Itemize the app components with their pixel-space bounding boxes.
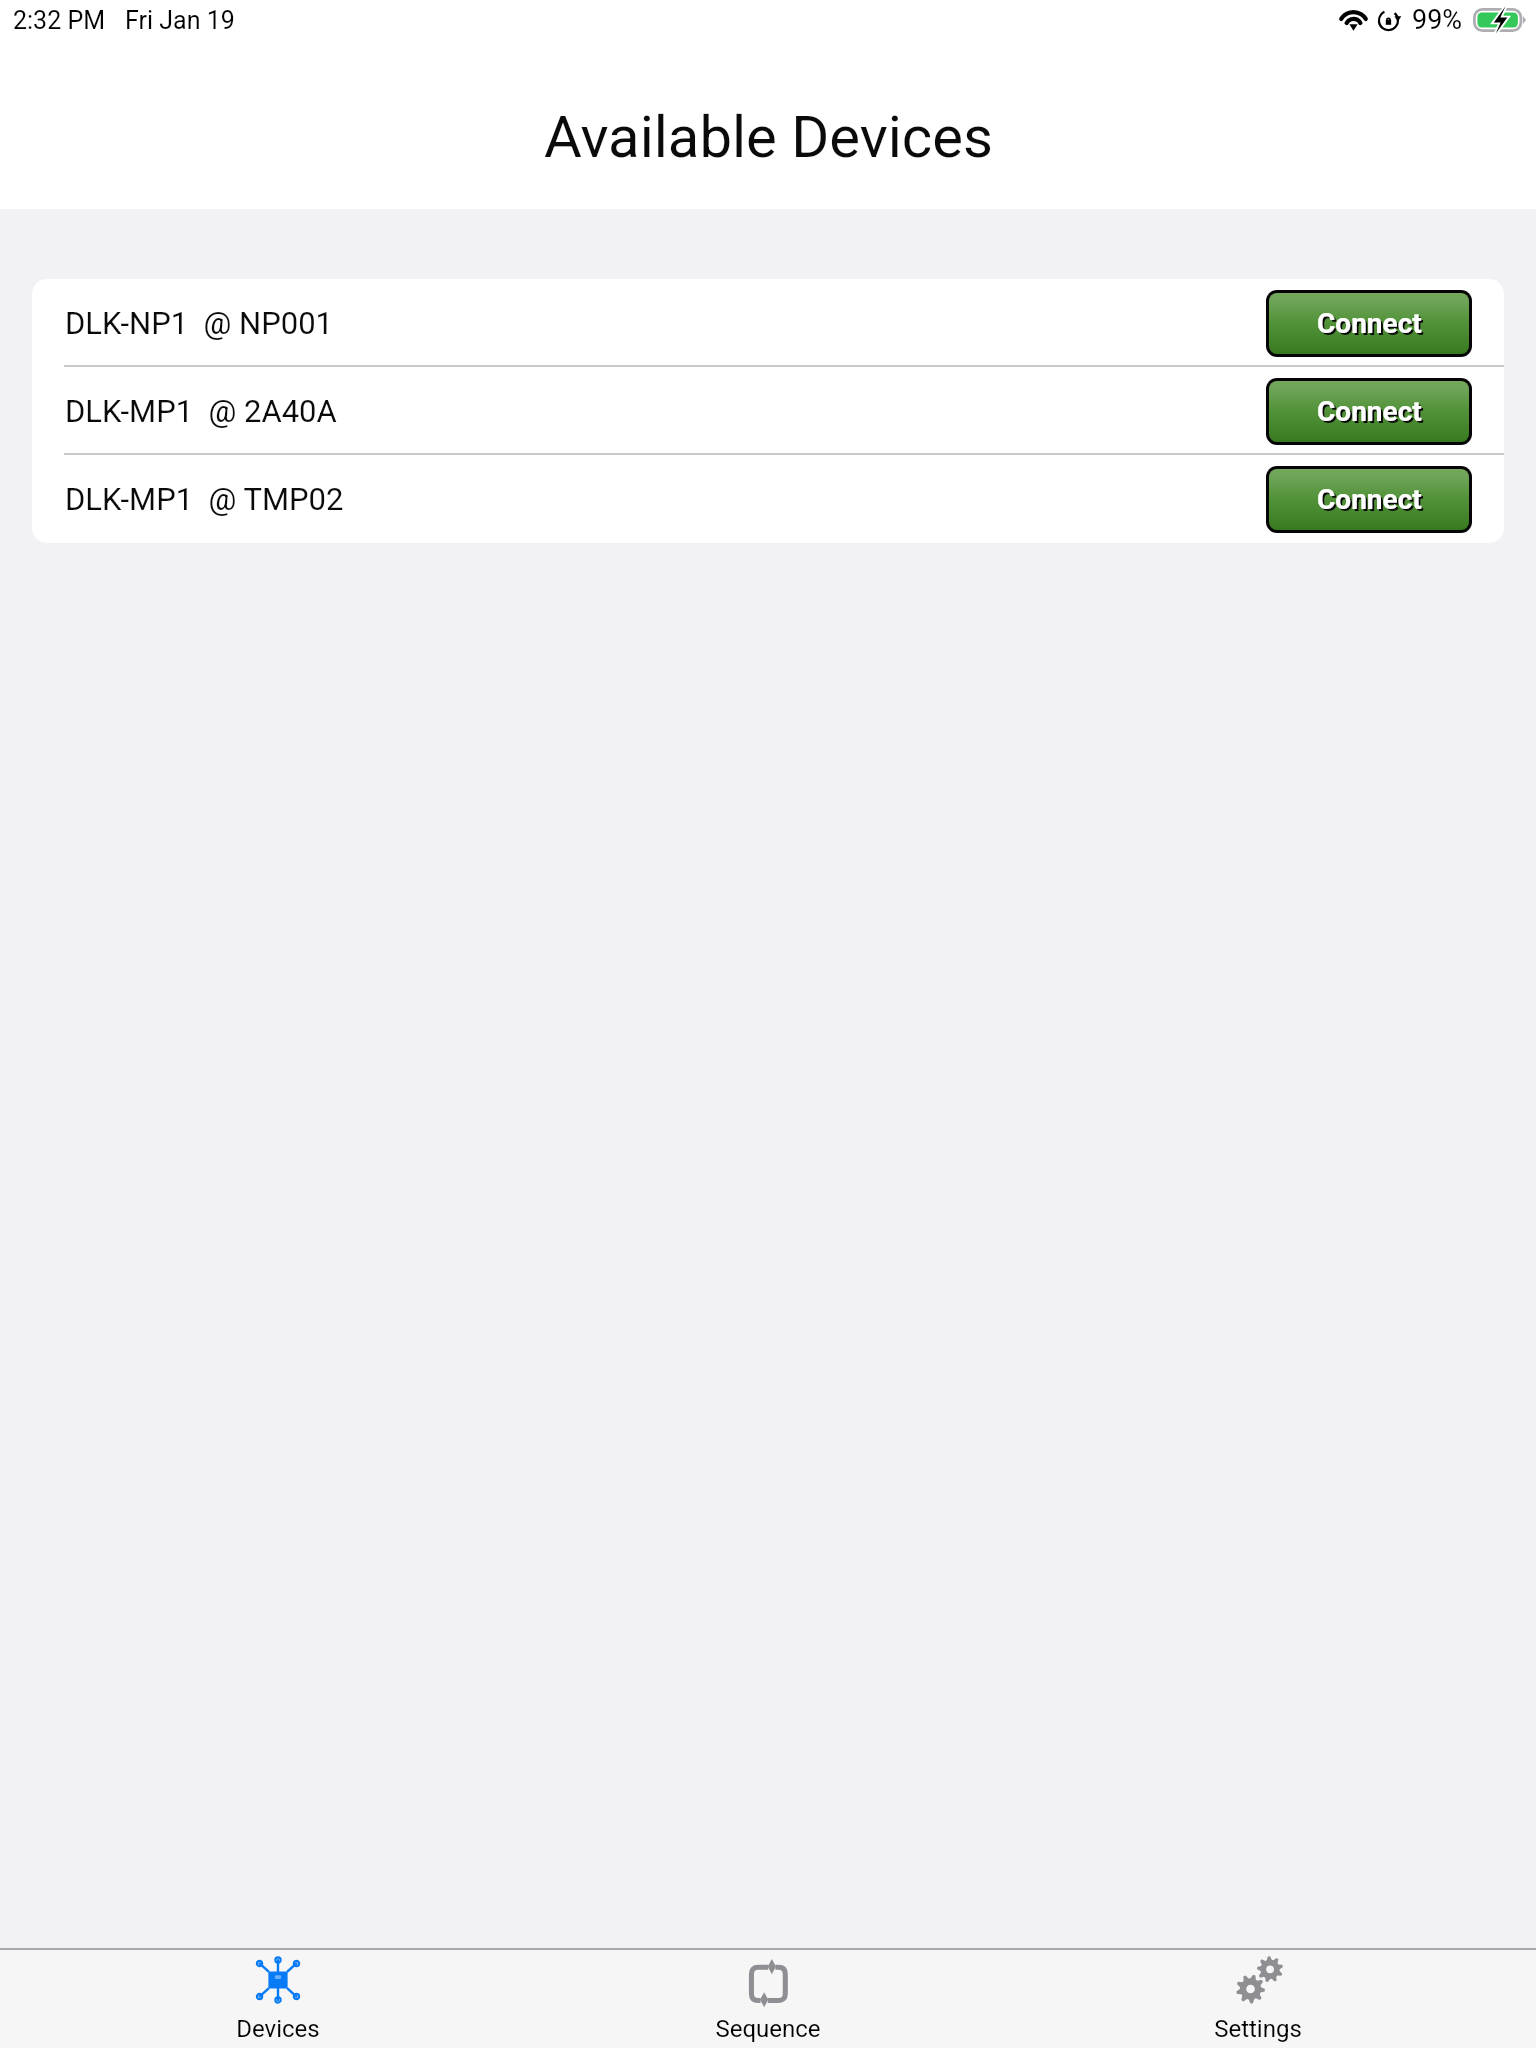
button[interactable]: Connect bbox=[1269, 381, 1469, 442]
staticText: Fri Jan 19 bbox=[125, 6, 235, 35]
button[interactable]: Sequence bbox=[523, 1950, 1013, 2048]
button[interactable]: DLK-NP1 @ NP001 bbox=[32, 279, 1504, 367]
staticText: DLK-NP1 @ NP001 bbox=[65, 305, 334, 341]
staticText: DLK-MP1 @ TMP02 bbox=[65, 481, 344, 517]
staticText: 99% bbox=[1412, 4, 1463, 36]
button[interactable]: Settings bbox=[1013, 1950, 1503, 2048]
button[interactable]: DLK-MP1 @ 2A40A bbox=[32, 367, 1504, 455]
staticText: Devices bbox=[236, 2015, 320, 2043]
staticText: Connect bbox=[1319, 309, 1424, 342]
staticText: Connect bbox=[1319, 485, 1424, 518]
staticText: Connect bbox=[1319, 397, 1424, 430]
staticText: DLK-MP1 @ 2A40A bbox=[65, 393, 337, 429]
staticText: 2:32 PM bbox=[13, 6, 106, 35]
button[interactable]: Devices bbox=[33, 1950, 523, 2048]
button[interactable]: Connect bbox=[1269, 469, 1469, 530]
staticText: Sequence bbox=[715, 2015, 821, 2043]
staticText: Connect bbox=[1317, 483, 1422, 516]
staticText: Connect bbox=[1317, 307, 1422, 340]
staticText: Available Devices bbox=[544, 103, 993, 171]
other: Battery 99 percent, charging bbox=[1473, 8, 1526, 32]
button[interactable]: DLK-MP1 @ TMP02 bbox=[32, 455, 1504, 543]
other: Wi-Fi bbox=[1339, 10, 1368, 31]
button[interactable]: Connect bbox=[1269, 293, 1469, 354]
staticText: Connect bbox=[1317, 395, 1422, 428]
other: Rotation lock bbox=[1379, 10, 1401, 31]
staticText: Settings bbox=[1214, 2015, 1302, 2043]
